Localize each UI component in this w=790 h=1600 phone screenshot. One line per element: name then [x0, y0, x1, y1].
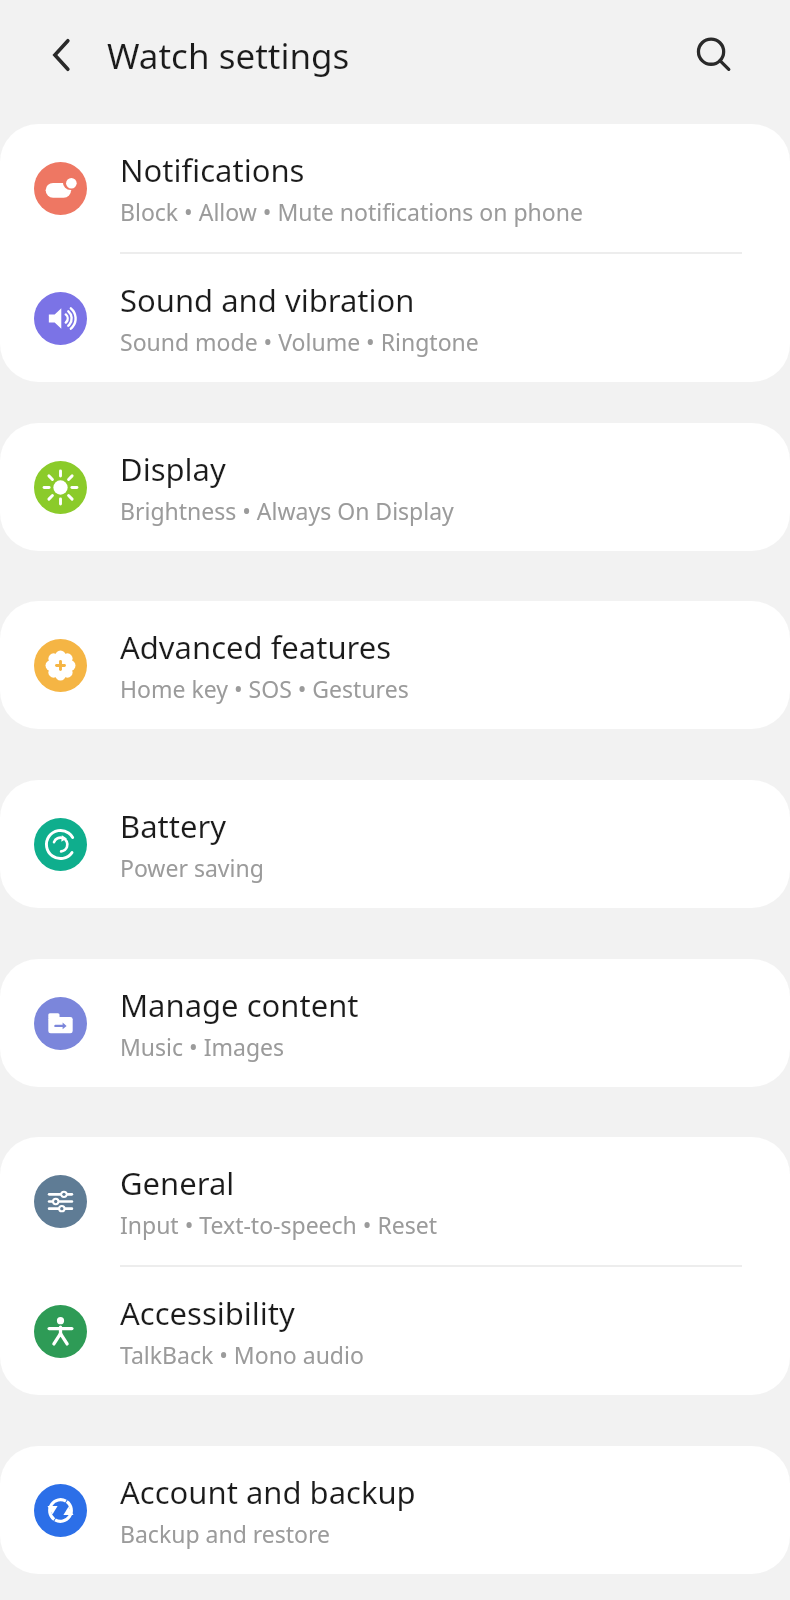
staticText: General	[120, 1162, 235, 1204]
button[interactable]: Battery	[0, 780, 790, 908]
staticText: Brightness • Always On Display	[120, 495, 454, 526]
button[interactable]: Accessibility	[0, 1267, 790, 1395]
staticText: Battery	[120, 805, 227, 847]
staticText: TalkBack • Mono audio	[120, 1339, 364, 1370]
button[interactable]: General	[0, 1137, 790, 1265]
staticText: Watch settings	[107, 32, 350, 80]
staticText: Backup and restore	[120, 1518, 331, 1549]
staticText: Power saving	[120, 852, 264, 883]
button[interactable]: Advanced features	[0, 601, 790, 729]
button[interactable]: Back	[30, 23, 94, 87]
staticText: Accessibility	[120, 1292, 295, 1334]
button[interactable]: Notifications	[0, 124, 790, 252]
button[interactable]: Search	[682, 23, 746, 87]
staticText: Input • Text-to-speech • Reset	[120, 1209, 438, 1240]
staticText: Manage content	[120, 984, 359, 1026]
staticText: Block • Allow • Mute notifications on ph…	[120, 196, 583, 227]
staticText: Sound mode • Volume • Ringtone	[120, 326, 479, 357]
staticText: Sound and vibration	[120, 279, 415, 321]
button[interactable]: Sound and vibration	[0, 254, 790, 382]
staticText: Advanced features	[120, 626, 392, 668]
staticText: Display	[120, 448, 226, 490]
button[interactable]: Account and backup	[0, 1446, 790, 1574]
button[interactable]: Display	[0, 423, 790, 551]
staticText: Music • Images	[120, 1031, 285, 1062]
staticText: Notifications	[120, 149, 305, 191]
button[interactable]: Manage content	[0, 959, 790, 1087]
staticText: Account and backup	[120, 1471, 416, 1513]
staticText: Home key • SOS • Gestures	[120, 673, 409, 704]
